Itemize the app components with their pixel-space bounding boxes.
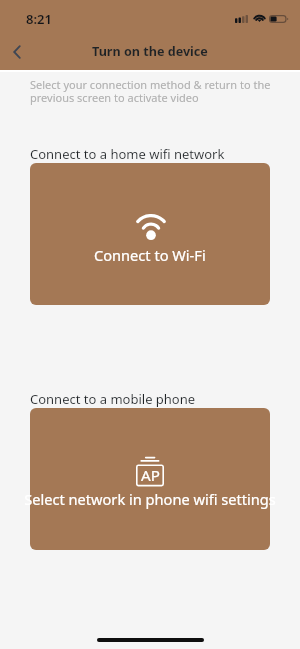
button[interactable]: AP [30, 408, 270, 550]
staticText: Connect to Wi-Fi [94, 245, 206, 265]
button[interactable]: Connect to Wi-Fi [30, 163, 270, 305]
staticText: Select network in phone wifi settings [24, 489, 276, 509]
button[interactable]: Back [3, 38, 31, 66]
staticText: AP [141, 465, 160, 486]
staticText: Turn on the device [92, 43, 208, 60]
staticText: Select your connection method & return t… [30, 77, 271, 105]
staticText: Connect to a home wifi network [30, 145, 225, 163]
staticText: 8:21 [26, 10, 52, 28]
staticText: Connect to a mobile phone [30, 390, 196, 408]
